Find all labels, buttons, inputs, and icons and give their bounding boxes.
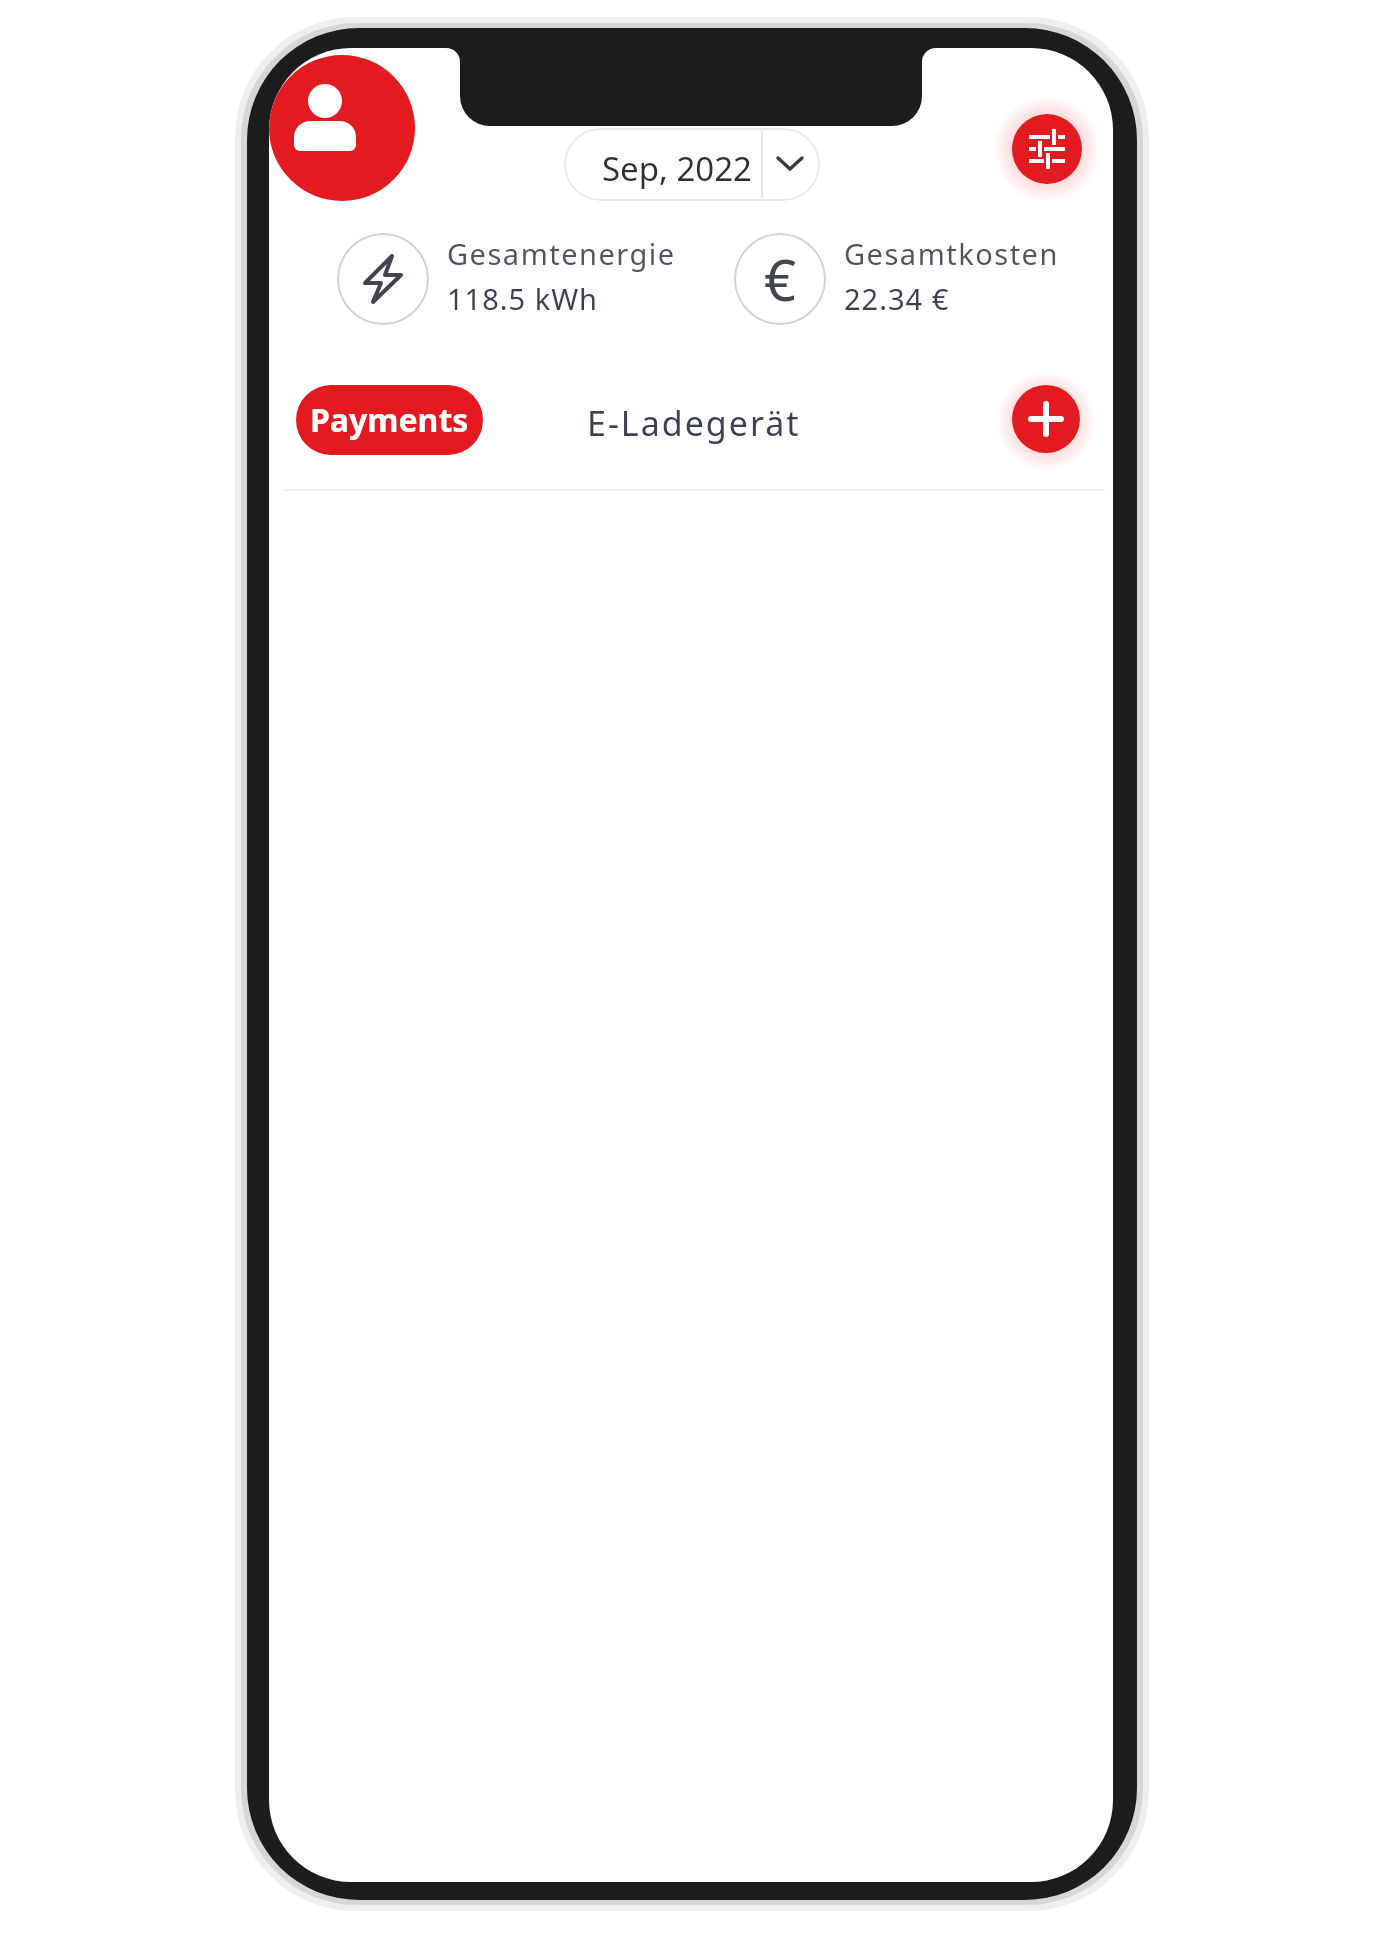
staticText: Sep, 2022 [602, 146, 752, 191]
staticText: E-Ladegerät [587, 400, 801, 446]
staticText: 22.34 € [844, 279, 950, 318]
button[interactable] [269, 55, 415, 201]
button[interactable] [1012, 114, 1082, 184]
button[interactable] [1012, 385, 1080, 453]
staticText: 118.5 kWh [447, 279, 599, 318]
staticText: Gesamtkosten [844, 234, 1059, 273]
staticText: Gesamtenergie [447, 234, 676, 273]
button[interactable]: Payments [296, 385, 483, 455]
button[interactable]: Sep, 2022 [564, 128, 820, 201]
staticText: € [764, 241, 797, 317]
staticText: Payments [310, 398, 469, 442]
